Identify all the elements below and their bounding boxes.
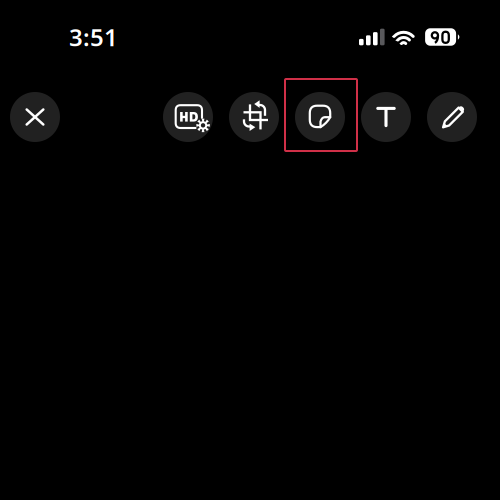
staticText: 3:51 [69, 21, 118, 53]
button[interactable]: Video quality [163, 92, 213, 142]
button[interactable]: Add text [361, 92, 411, 142]
button[interactable]: Close [10, 92, 60, 142]
button[interactable]: Crop and rotate [229, 92, 279, 142]
button[interactable]: Draw [427, 92, 477, 142]
button[interactable]: Stickers [295, 92, 345, 142]
